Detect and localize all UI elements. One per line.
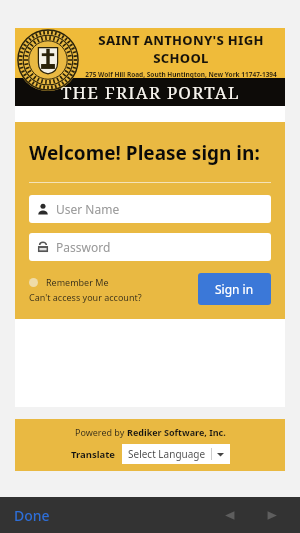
staticText: Sign in xyxy=(215,281,254,297)
button[interactable]: Sign in xyxy=(198,273,271,305)
button[interactable]: Remember Me xyxy=(29,276,109,288)
staticText: User Name xyxy=(56,201,120,217)
staticText: SAINT ANTHONY'S HIGH SCHOOL xyxy=(81,31,281,67)
staticText: Welcome! Please sign in: xyxy=(29,140,260,166)
button[interactable]: Password xyxy=(29,233,271,261)
staticText: Select Language xyxy=(128,447,206,461)
staticText: Translate xyxy=(71,448,116,461)
button[interactable]: Previous field xyxy=(216,502,243,529)
staticText: Password xyxy=(56,239,111,255)
staticText: THE FRIAR PORTAL xyxy=(61,81,240,104)
button[interactable]: Can't access your account? xyxy=(29,291,142,303)
staticText: Can't access your account? xyxy=(29,291,142,303)
staticText: Remember Me xyxy=(46,276,109,288)
button[interactable]: Done xyxy=(14,506,58,525)
button[interactable]: Next field xyxy=(259,502,286,529)
button[interactable]: User Name xyxy=(29,195,271,223)
button[interactable]: Select Language xyxy=(122,444,230,464)
staticText: 275 Wolf Hill Road, South Huntington, Ne… xyxy=(85,70,277,78)
staticText: Rediker Software, Inc. xyxy=(127,426,226,438)
staticText: Done xyxy=(14,506,50,525)
staticText: Powered by xyxy=(75,426,127,438)
